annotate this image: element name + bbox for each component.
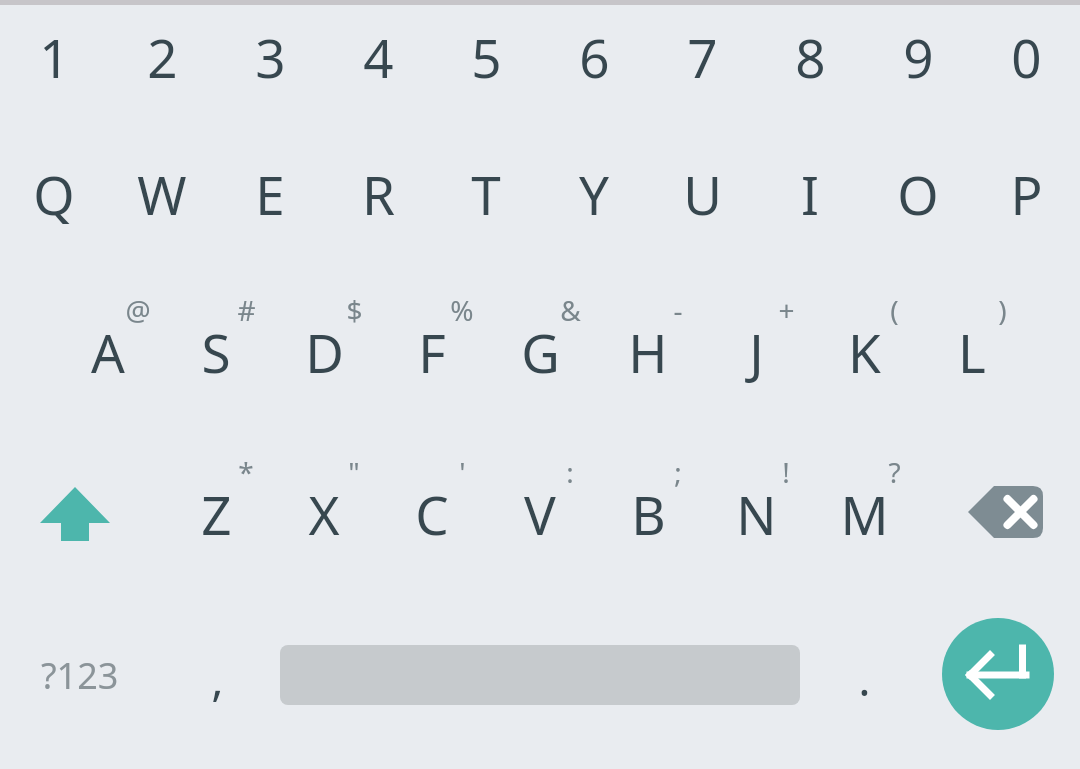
staticText: ;: [674, 453, 682, 491]
staticText: D: [305, 316, 344, 388]
button[interactable]: 6: [540, 7, 648, 107]
staticText: 1: [39, 21, 70, 93]
button[interactable]: R: [324, 139, 432, 249]
button[interactable]: ?123: [0, 620, 160, 730]
button[interactable]: U: [648, 139, 756, 249]
button[interactable]: T: [432, 139, 540, 249]
staticText: !: [782, 453, 790, 491]
button[interactable]: C: [378, 454, 486, 574]
staticText: O: [897, 158, 939, 230]
staticText: T: [471, 158, 501, 230]
staticText: 8: [795, 21, 826, 93]
button[interactable]: E: [216, 139, 324, 249]
button[interactable]: 5: [432, 7, 540, 107]
staticText: *: [238, 453, 254, 491]
staticText: E: [255, 158, 285, 230]
staticText: U: [683, 158, 722, 230]
button[interactable]: S: [162, 292, 270, 412]
staticText: Y: [579, 158, 609, 230]
staticText: +: [778, 291, 795, 329]
button[interactable]: M: [810, 454, 918, 574]
button[interactable]: 3: [216, 7, 324, 107]
staticText: $: [346, 291, 363, 329]
button[interactable]: P: [972, 139, 1080, 249]
button[interactable]: Z: [162, 454, 270, 574]
staticText: 4: [363, 21, 394, 93]
staticText: B: [631, 478, 666, 550]
staticText: G: [521, 316, 560, 388]
staticText: 9: [903, 21, 934, 93]
button[interactable]: F: [378, 292, 486, 412]
staticText: R: [362, 158, 395, 230]
button[interactable]: K: [810, 292, 918, 412]
staticText: V: [524, 478, 556, 550]
staticText: %: [450, 291, 474, 329]
staticText: ?: [888, 453, 901, 491]
staticText: Q: [33, 158, 75, 230]
staticText: H: [628, 316, 668, 388]
button[interactable]: ,: [163, 623, 271, 733]
staticText: F: [418, 316, 446, 388]
button[interactable]: O: [864, 139, 972, 249]
button[interactable]: Y: [540, 139, 648, 249]
button[interactable]: .: [810, 623, 918, 733]
button[interactable]: X: [270, 454, 378, 574]
button[interactable]: Q: [0, 139, 108, 249]
button[interactable]: H: [594, 292, 702, 412]
button[interactable]: 9: [864, 7, 972, 107]
button[interactable]: 0: [972, 7, 1080, 107]
button[interactable]: 1: [0, 7, 108, 107]
button[interactable]: J: [702, 292, 810, 412]
staticText: Z: [201, 478, 232, 550]
staticText: #: [237, 291, 256, 329]
staticText: :: [566, 453, 574, 491]
button[interactable]: Shift: [0, 454, 162, 574]
button[interactable]: A: [54, 292, 162, 412]
button[interactable]: D: [270, 292, 378, 412]
staticText: J: [749, 316, 764, 388]
button[interactable]: 2: [108, 7, 216, 107]
staticText: @: [125, 291, 151, 329]
button[interactable]: I: [756, 139, 864, 249]
button[interactable]: V: [486, 454, 594, 574]
staticText: M: [840, 478, 889, 550]
button[interactable]: G: [486, 292, 594, 412]
button[interactable]: 8: [756, 7, 864, 107]
button[interactable]: W: [108, 139, 216, 249]
staticText: ": [348, 453, 360, 491]
staticText: 7: [687, 21, 718, 93]
staticText: 6: [579, 21, 610, 93]
button[interactable]: Backspace: [948, 454, 1080, 574]
staticText: I: [801, 158, 819, 230]
staticText: ,: [211, 647, 224, 710]
button[interactable]: Enter: [942, 618, 1054, 730]
staticText: L: [958, 316, 986, 388]
button[interactable]: 7: [648, 7, 756, 107]
button[interactable]: N: [702, 454, 810, 574]
staticText: P: [1010, 158, 1043, 230]
staticText: A: [91, 316, 125, 388]
staticText: &: [560, 291, 581, 329]
staticText: W: [137, 158, 187, 230]
staticText: 5: [471, 21, 502, 93]
staticText: -: [673, 291, 683, 329]
staticText: C: [415, 478, 449, 550]
staticText: K: [848, 316, 881, 388]
staticText: 2: [147, 21, 178, 93]
staticText: ): [998, 291, 1007, 329]
staticText: .: [858, 647, 871, 710]
button[interactable]: 4: [324, 7, 432, 107]
staticText: ': [459, 453, 466, 491]
button[interactable]: L: [918, 292, 1026, 412]
staticText: X: [308, 478, 340, 550]
staticText: S: [201, 316, 231, 388]
staticText: N: [736, 478, 777, 550]
staticText: 0: [1011, 21, 1042, 93]
staticText: ?123: [41, 651, 119, 700]
staticText: (: [890, 291, 899, 329]
button[interactable]: B: [594, 454, 702, 574]
staticText: 3: [255, 21, 286, 93]
